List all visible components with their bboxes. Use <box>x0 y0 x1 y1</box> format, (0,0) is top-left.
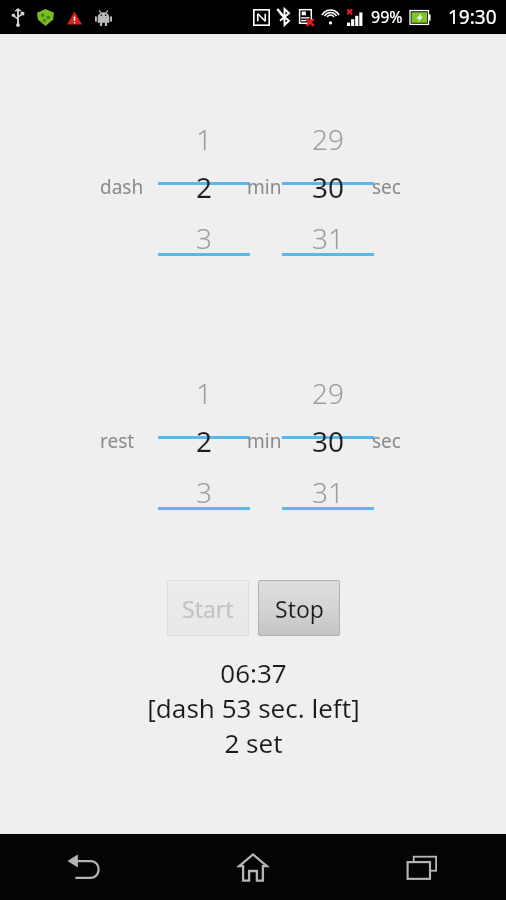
button[interactable]: dash seconds <box>282 87 374 287</box>
staticText: min <box>247 428 282 454</box>
staticText: 2 <box>196 422 213 460</box>
button[interactable]: Home <box>168 834 337 900</box>
staticText: 29 <box>312 120 344 158</box>
button[interactable]: Stop <box>258 580 340 636</box>
staticText: 2 <box>196 168 213 206</box>
staticText: 3 <box>196 473 212 511</box>
staticText: Start <box>182 593 234 624</box>
staticText: rest <box>100 428 135 454</box>
staticText: 3 <box>196 219 212 257</box>
staticText: 19:30 <box>448 4 497 30</box>
staticText: 2 set <box>224 725 283 760</box>
button[interactable]: dash minutes <box>158 87 250 287</box>
staticText: dash <box>100 174 144 200</box>
button[interactable]: rest minutes <box>158 341 250 541</box>
staticText: 31 <box>312 219 344 257</box>
staticText: 99% <box>371 6 403 28</box>
staticText: sec <box>372 428 401 454</box>
button[interactable]: Back <box>0 834 168 900</box>
staticText: 30 <box>312 168 345 206</box>
staticText: 06:37 <box>220 655 287 690</box>
button[interactable]: Recent apps <box>337 834 506 900</box>
button[interactable]: Start <box>167 580 249 636</box>
staticText: 1 <box>196 374 212 412</box>
staticText: 29 <box>312 374 344 412</box>
staticText: Stop <box>275 593 324 624</box>
staticText: 31 <box>312 473 344 511</box>
staticText: min <box>247 174 282 200</box>
staticText: 30 <box>312 422 345 460</box>
staticText: 1 <box>196 120 212 158</box>
staticText: sec <box>372 174 401 200</box>
staticText: [dash 53 sec. left] <box>147 690 360 725</box>
button[interactable]: rest seconds <box>282 341 374 541</box>
